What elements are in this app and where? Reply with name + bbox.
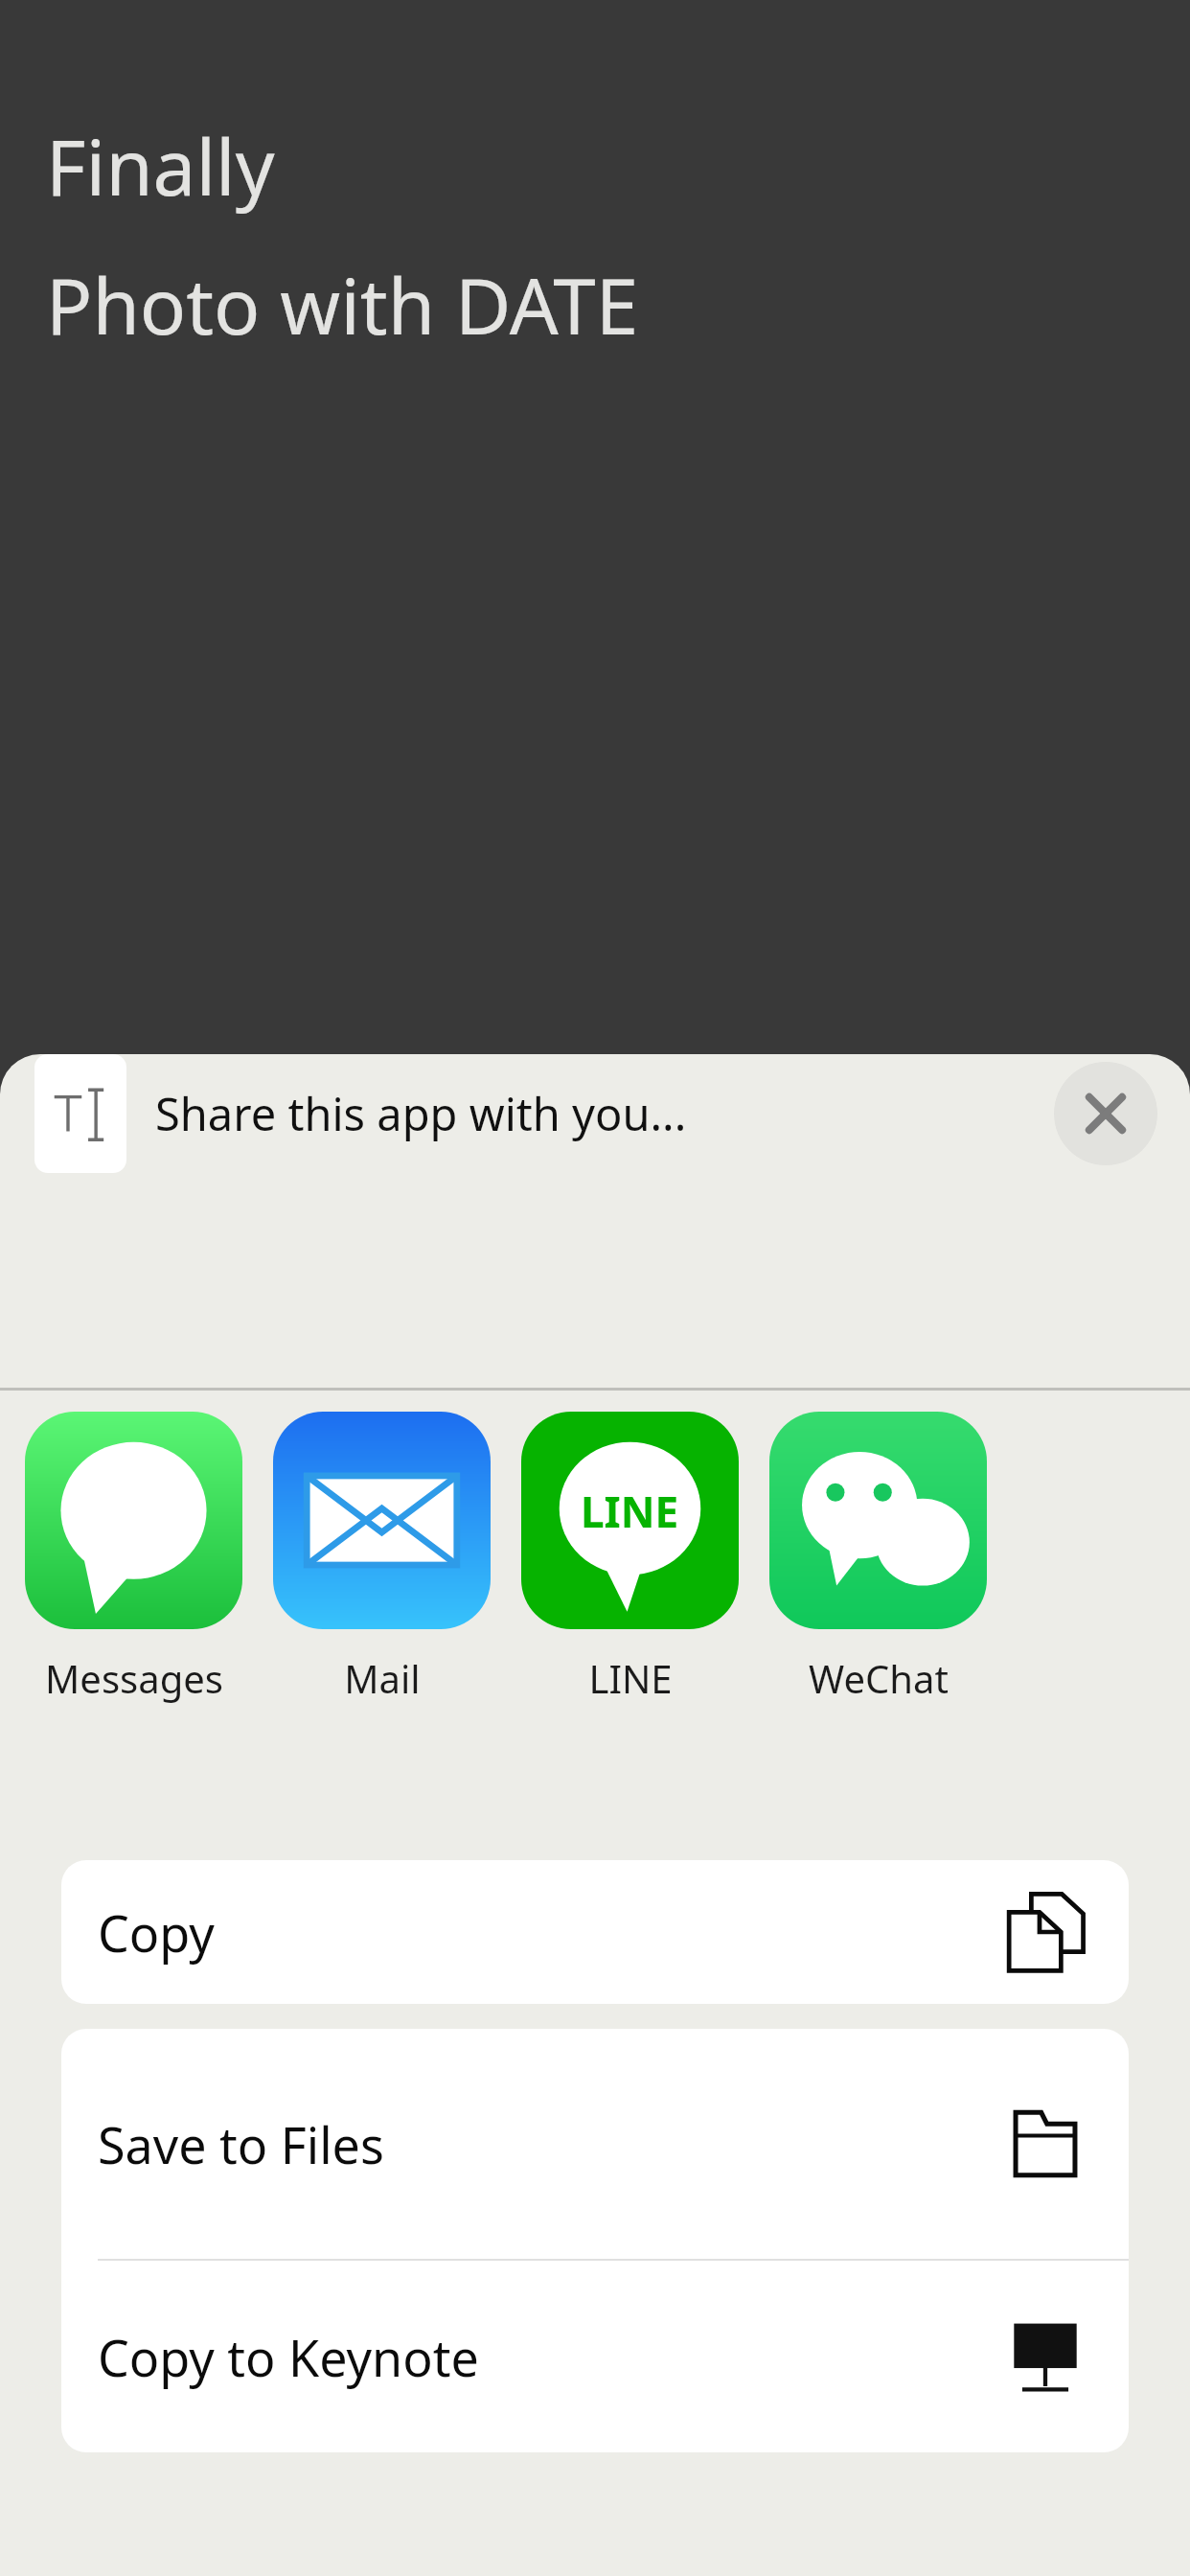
button[interactable]: Save to Files (61, 2029, 1129, 2259)
button[interactable]: Copy to Keynote (61, 2261, 1129, 2452)
button[interactable]: Close (1054, 1062, 1157, 1165)
staticText: Copy to Keynote (98, 2323, 479, 2391)
staticText: LINE (588, 1652, 673, 1704)
button[interactable]: Copy (61, 1860, 1129, 2004)
staticText: Save to Files (98, 2110, 384, 2178)
button[interactable]: Mail (273, 1391, 491, 1839)
staticText: WeChat (809, 1652, 949, 1704)
staticText: Copy (98, 1898, 215, 1966)
button[interactable]: WeChat (769, 1391, 987, 1839)
staticText: Share this app with you... (155, 1083, 687, 1144)
staticText: LINE (581, 1483, 679, 1540)
staticText: Messages (45, 1652, 223, 1704)
button[interactable]: Share this app with you... (0, 1054, 1190, 1388)
staticText: Finally (46, 113, 275, 218)
button[interactable]: Messages (25, 1391, 242, 1839)
staticText: Mail (344, 1652, 421, 1704)
button[interactable]: LINE (521, 1391, 739, 1839)
staticText: Photo with DATE (46, 252, 639, 356)
